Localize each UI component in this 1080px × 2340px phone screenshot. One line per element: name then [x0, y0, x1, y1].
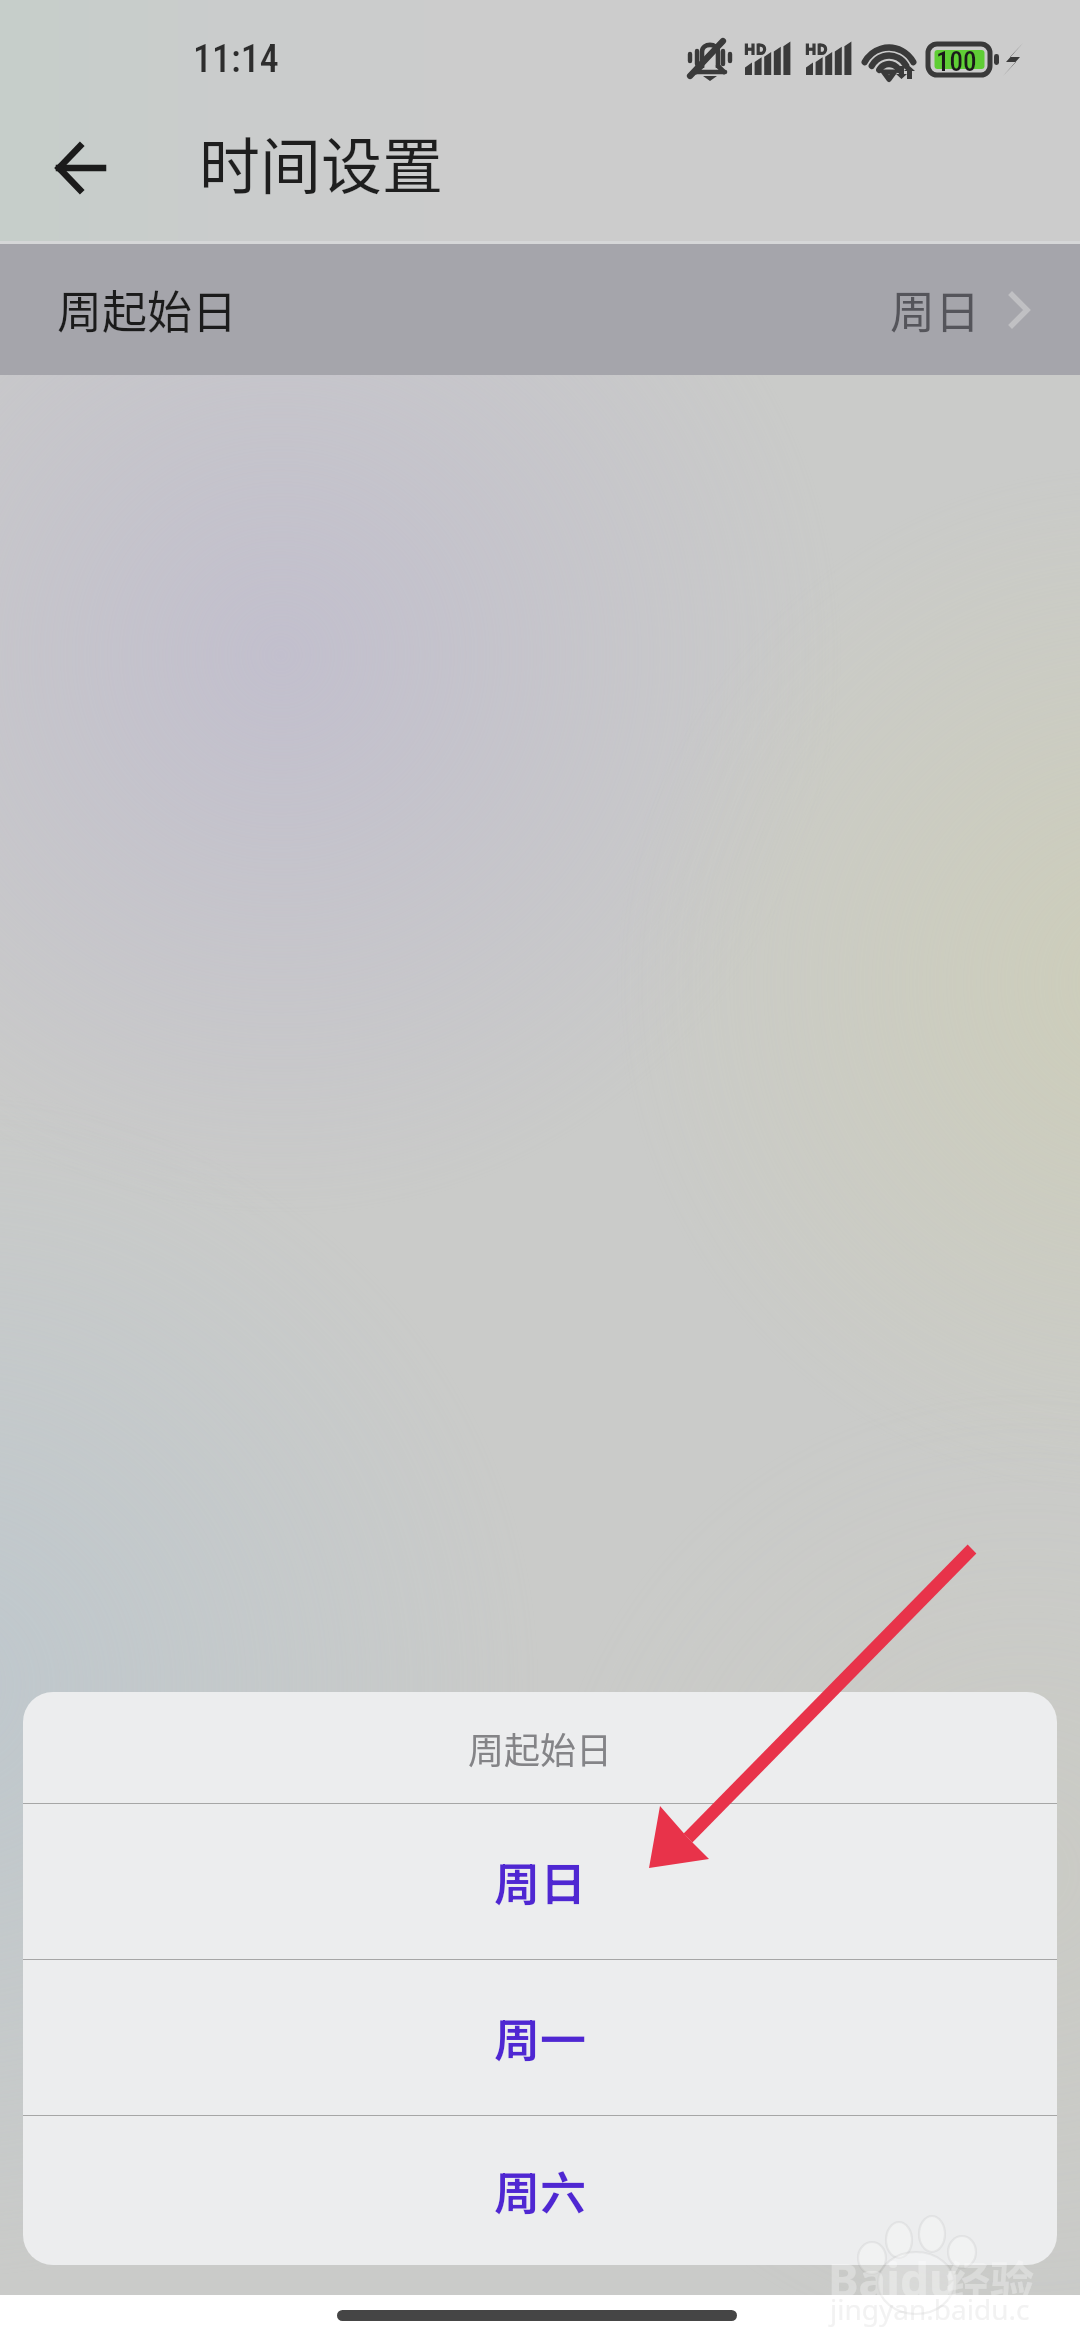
staticText: jingyan.baidu.com: [830, 2290, 1035, 2340]
staticText: 100: [936, 46, 977, 78]
button[interactable]: 周六: [23, 2116, 1057, 2265]
staticText: Baidu: [828, 2248, 959, 2311]
staticText: 时间设置: [199, 118, 444, 206]
button[interactable]: 周日: [23, 1804, 1057, 1959]
button[interactable]: Back: [26, 110, 136, 220]
staticText: 11:14: [193, 37, 279, 82]
staticText: 周起始日: [468, 1722, 613, 1774]
staticText: 周六: [494, 2157, 586, 2224]
button[interactable]: 周一: [23, 1960, 1057, 2115]
staticText: 周日: [890, 277, 981, 342]
staticText: 周起始日: [57, 277, 238, 342]
staticText: 经验: [946, 2248, 1034, 2312]
button[interactable]: 周起始日: [0, 244, 1080, 375]
staticText: 周日: [494, 1848, 586, 1915]
staticText: 周一: [494, 2004, 586, 2071]
